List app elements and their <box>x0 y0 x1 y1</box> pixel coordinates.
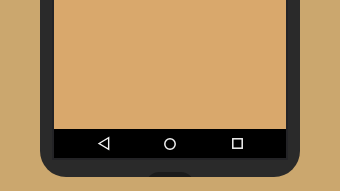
button[interactable]: Back <box>87 129 121 158</box>
button[interactable]: Home <box>153 129 187 158</box>
button[interactable]: Recent apps <box>220 129 254 158</box>
button[interactable]: Home button <box>146 172 194 177</box>
